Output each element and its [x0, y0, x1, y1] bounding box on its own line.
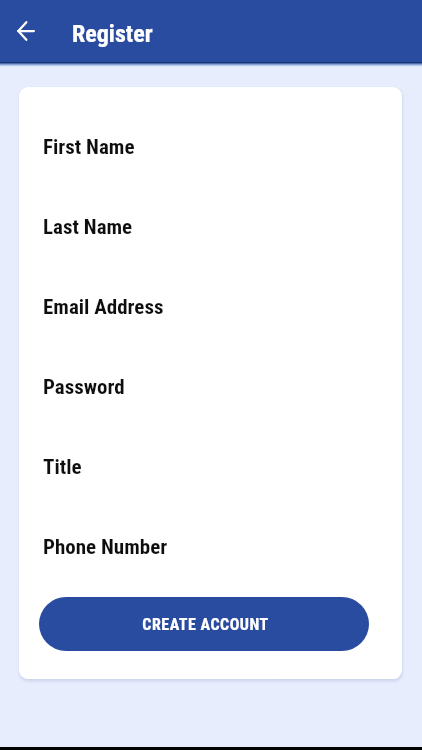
button[interactable]: Password [19, 375, 402, 455]
button[interactable]: First Name [19, 135, 402, 215]
button[interactable]: Title [19, 455, 402, 535]
button[interactable]: CREATE ACCOUNT [39, 597, 369, 651]
staticText: First Name [43, 135, 135, 160]
button[interactable]: Back [7, 12, 45, 50]
staticText: Phone Number [43, 535, 168, 560]
button[interactable]: Email Address [19, 295, 402, 375]
button[interactable]: Last Name [19, 215, 402, 295]
staticText: CREATE ACCOUNT [142, 615, 269, 634]
staticText: Last Name [43, 215, 133, 240]
staticText: Register [72, 20, 153, 48]
button[interactable]: Phone Number [19, 535, 402, 575]
staticText: Email Address [43, 295, 164, 320]
staticText: Password [43, 375, 125, 400]
staticText: Title [43, 455, 82, 480]
